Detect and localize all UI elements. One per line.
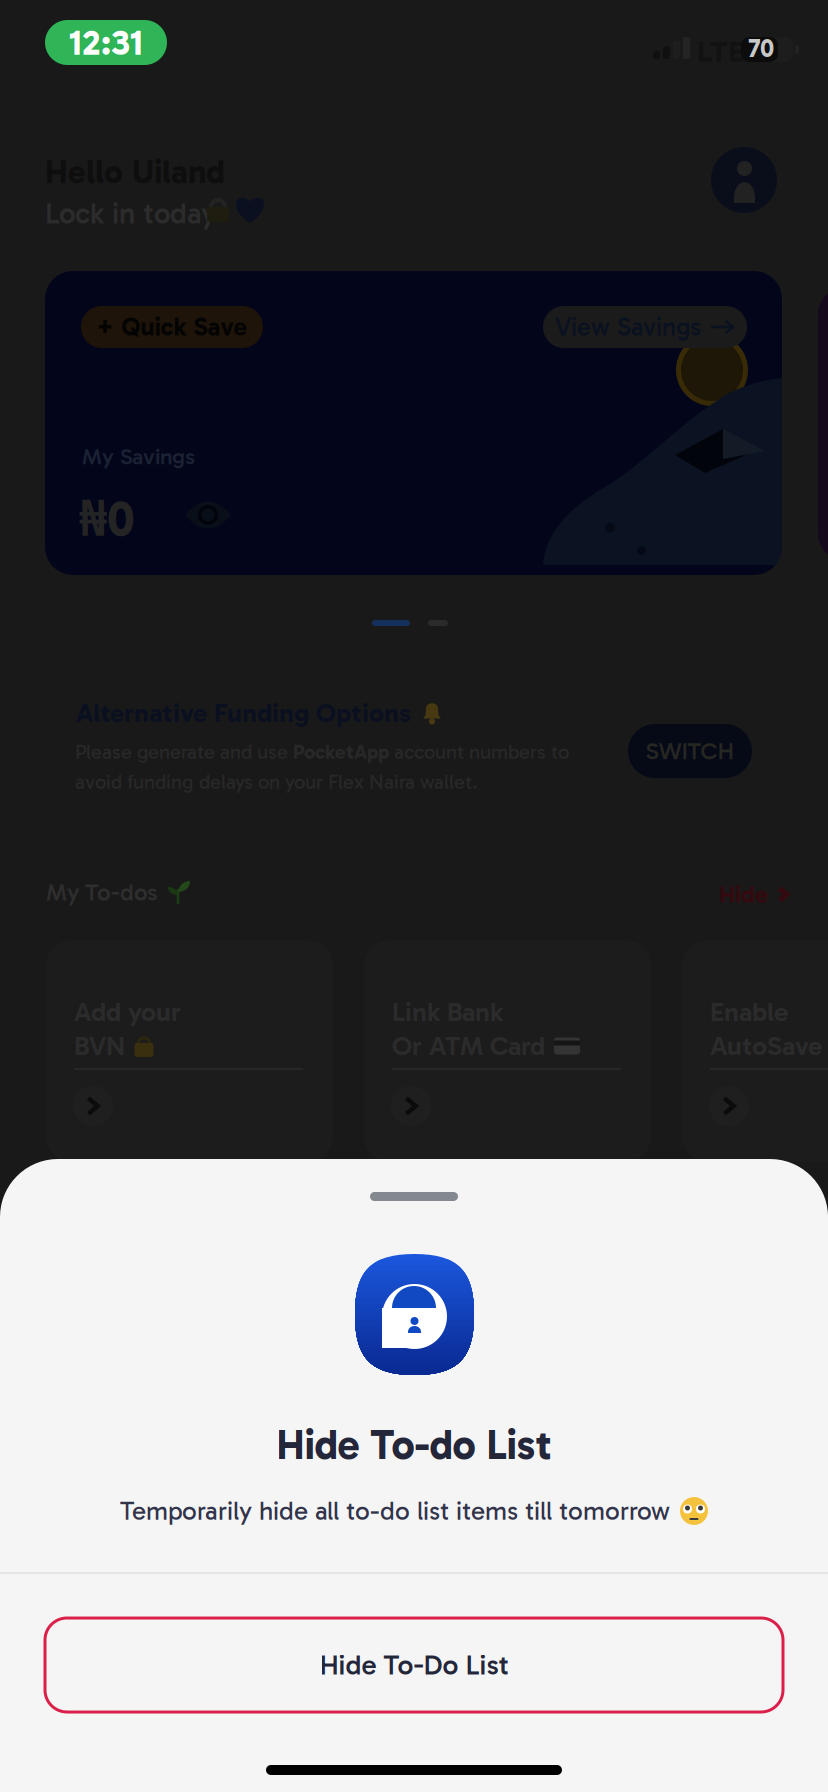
button[interactable]: Add your xyxy=(46,940,333,1162)
button[interactable]: Link Bank xyxy=(364,940,651,1162)
staticText: Add your xyxy=(74,996,181,1028)
staticText: PocketApp xyxy=(293,740,389,764)
button[interactable]: Enable xyxy=(682,940,828,1162)
staticText: account numbers to xyxy=(389,740,569,764)
staticText: Hide To-do List xyxy=(276,1420,551,1470)
staticText: Hide xyxy=(719,880,768,909)
staticText: Hide To-Do List xyxy=(319,1648,508,1682)
button[interactable]: Profile xyxy=(711,147,777,213)
staticText: 12:31 xyxy=(69,21,143,64)
staticText: ₦0 xyxy=(79,483,135,550)
staticText: 70 xyxy=(748,33,774,64)
staticText: My Savings xyxy=(82,443,195,470)
button[interactable]: View Savings xyxy=(543,306,747,348)
staticText: Enable xyxy=(710,996,788,1028)
button[interactable]: SWITCH xyxy=(628,724,752,778)
button[interactable]: + xyxy=(81,306,263,348)
staticText: Quick Save xyxy=(121,312,247,342)
staticText: Alternative Funding Options xyxy=(76,697,411,729)
staticText: BVN xyxy=(74,1030,125,1062)
staticText: View Savings xyxy=(555,312,701,342)
button[interactable]: Hide To-Do List xyxy=(45,1618,783,1712)
staticText: + xyxy=(96,312,113,342)
staticText: Lock in today xyxy=(45,196,216,231)
staticText: Please generate and use xyxy=(75,740,293,764)
staticText: AutoSave xyxy=(710,1030,822,1062)
staticText: Hello Uiland xyxy=(45,152,225,192)
staticText: Link Bank xyxy=(392,996,503,1028)
staticText: LTE xyxy=(697,33,744,70)
staticText: Temporarily hide all to-do list items ti… xyxy=(120,1495,670,1526)
staticText: SWITCH xyxy=(645,737,734,765)
staticText: Or ATM Card xyxy=(392,1030,545,1062)
staticText: My To-dos xyxy=(46,878,158,907)
button[interactable]: Hide xyxy=(719,880,789,909)
staticText: avoid funding delays on your Flex Naira … xyxy=(75,770,477,794)
